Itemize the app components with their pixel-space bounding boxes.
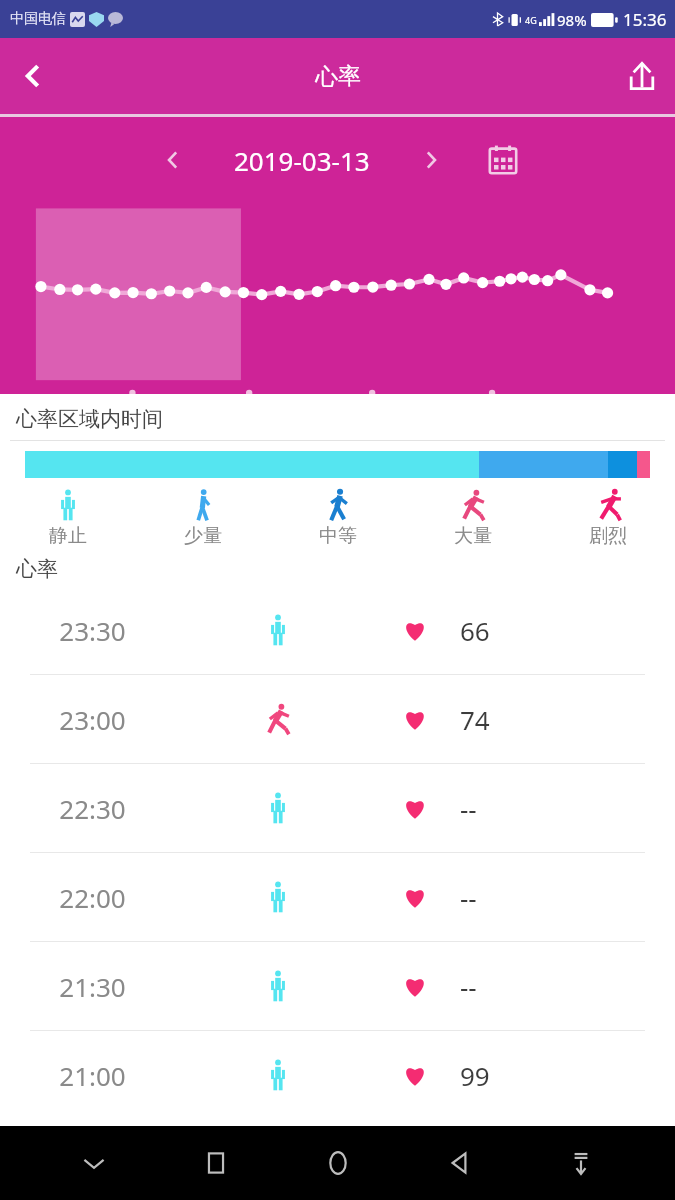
staticText: 中等 (319, 524, 357, 548)
button[interactable]: Previous day (146, 133, 200, 187)
staticText: 98% (557, 10, 587, 30)
staticText: 21:30 (0, 969, 185, 1004)
staticText: 22:30 (0, 791, 185, 826)
staticText: -- (460, 880, 570, 915)
staticText: 剧烈 (589, 524, 627, 548)
staticText: 99 (460, 1058, 570, 1093)
staticText: 15:36 (623, 8, 667, 31)
staticText: 心率 (16, 556, 58, 582)
button[interactable]: 22:00 (0, 853, 675, 941)
staticText: 23:00 (0, 702, 185, 737)
button[interactable]: 静止 (0, 488, 135, 548)
staticText: 21:00 (0, 1058, 185, 1093)
staticText: 大量 (454, 524, 492, 548)
staticText: 66 (460, 613, 570, 648)
button[interactable]: 少量 (135, 488, 270, 548)
button[interactable]: 大量 (405, 488, 540, 548)
button[interactable]: Recents (188, 1135, 244, 1191)
button[interactable]: Pick date (476, 133, 530, 187)
button[interactable]: 中等 (270, 488, 405, 548)
button[interactable]: Notifications (553, 1135, 609, 1191)
staticText: 中国电信 (10, 10, 66, 28)
button[interactable]: 21:00 (0, 1031, 675, 1119)
button[interactable]: 21:30 (0, 942, 675, 1030)
staticText: 心率 (315, 62, 361, 91)
staticText: 少量 (184, 524, 222, 548)
button[interactable]: Hide keyboard (66, 1135, 122, 1191)
button[interactable]: 23:30 (0, 586, 675, 674)
staticText: 静止 (49, 524, 87, 548)
button[interactable]: 23:00 (0, 675, 675, 763)
staticText: 4G (525, 14, 537, 26)
button[interactable]: Back (0, 43, 66, 109)
button[interactable]: 2019-03-13 (234, 143, 370, 178)
staticText: 心率区域内时间 (16, 406, 163, 432)
staticText: -- (460, 969, 570, 1004)
button[interactable]: 22:30 (0, 764, 675, 852)
button[interactable]: Home (310, 1135, 366, 1191)
staticText: 23:30 (0, 613, 185, 648)
button[interactable]: 剧烈 (540, 488, 675, 548)
button[interactable]: Share (609, 43, 675, 109)
button[interactable]: Next day (404, 133, 458, 187)
staticText: -- (460, 791, 570, 826)
staticText: 74 (460, 702, 570, 737)
staticText: 22:00 (0, 880, 185, 915)
button[interactable]: Back (431, 1135, 487, 1191)
